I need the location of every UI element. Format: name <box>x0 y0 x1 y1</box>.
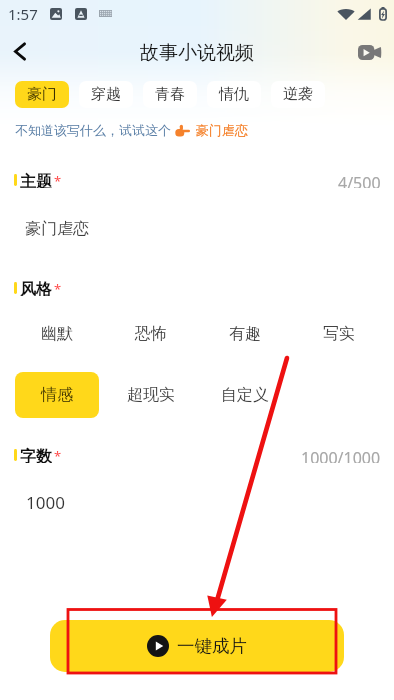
staticText: 自定义 <box>221 385 269 405</box>
staticText: 豪门 <box>27 85 57 104</box>
staticText: 豪门虐恋 <box>196 122 248 138</box>
staticText: 1000/1000 <box>301 447 381 463</box>
staticText: 4/500 <box>338 172 381 188</box>
staticText: 幽默 <box>41 324 73 344</box>
staticText: * <box>54 447 62 463</box>
staticText: 豪门虐恋 <box>25 219 89 239</box>
button[interactable]: 穿越 <box>79 81 133 108</box>
button[interactable]: 有趣 <box>203 311 287 357</box>
staticText: 一键成片 <box>177 635 247 657</box>
staticText: 超现实 <box>127 385 175 405</box>
staticText: 字数 <box>20 447 52 463</box>
button[interactable]: Back <box>0 31 40 71</box>
staticText: 逆袭 <box>283 85 313 104</box>
staticText: 风格 <box>20 280 52 296</box>
button[interactable]: 幽默 <box>15 311 99 357</box>
staticText: 情感 <box>41 385 73 405</box>
staticText: 恐怖 <box>135 324 167 344</box>
staticText: 情仇 <box>219 85 249 104</box>
button[interactable]: 恐怖 <box>109 311 193 357</box>
staticText: 有趣 <box>229 324 261 344</box>
staticText: 青春 <box>155 85 185 104</box>
staticText: 穿越 <box>91 85 121 104</box>
button[interactable]: 一键成片 <box>50 620 344 672</box>
staticText: 不知道该写什么，试试这个 <box>15 122 171 138</box>
button[interactable]: 写实 <box>297 311 381 357</box>
button[interactable]: 豪门 <box>15 81 69 108</box>
staticText: * <box>54 280 62 296</box>
button[interactable]: Video <box>351 34 387 70</box>
button[interactable]: 情仇 <box>207 81 261 108</box>
staticText: 1000 <box>26 491 65 514</box>
button[interactable]: 逆袭 <box>271 81 325 108</box>
button[interactable]: 青春 <box>143 81 197 108</box>
staticText: 主题 <box>20 172 52 188</box>
staticText: 1:57 <box>8 4 38 24</box>
button[interactable]: 自定义 <box>203 372 287 418</box>
staticText: 故事小说视频 <box>140 41 254 65</box>
button[interactable]: 超现实 <box>109 372 193 418</box>
button[interactable]: 情感 <box>15 372 99 418</box>
staticText: 写实 <box>323 324 355 344</box>
staticText: * <box>54 172 62 188</box>
